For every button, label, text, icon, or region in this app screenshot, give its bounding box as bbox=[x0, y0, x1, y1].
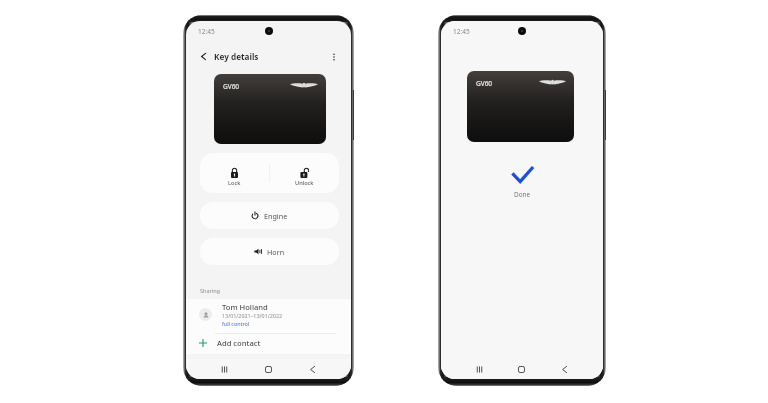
button[interactable]: Unlock bbox=[270, 153, 339, 193]
button[interactable]: Home bbox=[246, 359, 290, 379]
staticText: Engine bbox=[264, 211, 288, 221]
button[interactable]: Back bbox=[543, 359, 586, 379]
staticText: GV60 bbox=[223, 82, 240, 91]
staticText: 13/01/2021–13/01/2022 bbox=[222, 312, 283, 319]
staticText: Done bbox=[514, 190, 531, 199]
staticText: Lock bbox=[228, 179, 241, 187]
staticText: GV60 bbox=[476, 79, 493, 88]
staticText: 12:45 bbox=[453, 27, 470, 36]
button[interactable]: Tom Holland bbox=[186, 299, 351, 333]
button[interactable]: Recent apps bbox=[203, 359, 246, 379]
staticText: Unlock bbox=[295, 179, 314, 187]
button[interactable]: Back bbox=[290, 359, 334, 379]
staticText: Add contact bbox=[217, 338, 261, 348]
staticText: Key details bbox=[214, 51, 259, 62]
button[interactable]: Add contact bbox=[186, 334, 351, 354]
button[interactable]: Horn bbox=[200, 238, 339, 265]
staticText: 12:45 bbox=[198, 27, 215, 36]
button[interactable]: Recent apps bbox=[458, 359, 500, 379]
button[interactable]: Lock bbox=[200, 153, 269, 193]
staticText: Tom Holland bbox=[222, 302, 268, 312]
staticText: Sharing bbox=[200, 287, 220, 294]
button[interactable]: Home bbox=[500, 359, 543, 379]
button[interactable]: Back bbox=[197, 50, 210, 63]
button[interactable]: Engine bbox=[200, 202, 339, 229]
button[interactable]: More options bbox=[327, 50, 340, 63]
staticText: full control bbox=[222, 320, 250, 327]
staticText: Horn bbox=[267, 247, 285, 257]
